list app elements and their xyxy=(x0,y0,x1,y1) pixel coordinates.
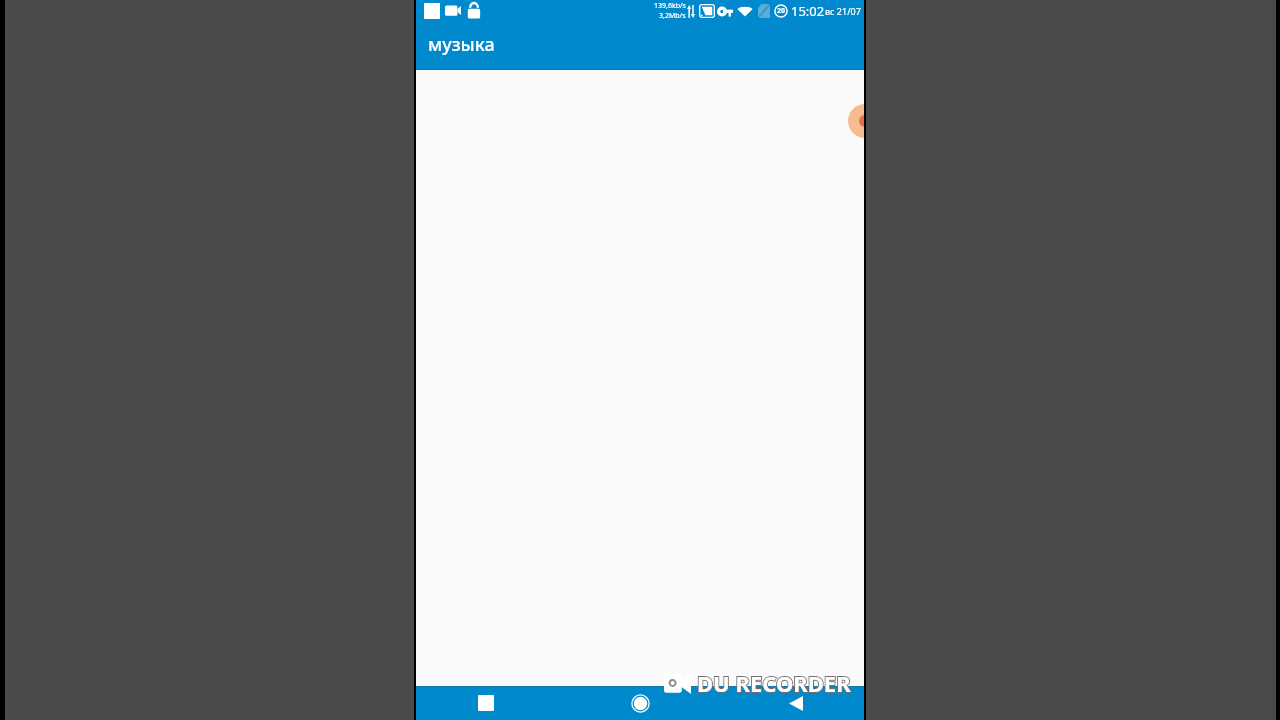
staticText: 139,6kb/s xyxy=(654,1,686,11)
staticText: вс 21/07 xyxy=(825,5,861,17)
staticText: 15:02 xyxy=(791,2,825,20)
button[interactable]: Back xyxy=(772,690,819,716)
staticText: 20 xyxy=(777,6,786,16)
button[interactable]: Home xyxy=(617,689,664,717)
staticText: DU RECORDER xyxy=(697,668,851,698)
staticText: DU RECORDER xyxy=(697,668,851,698)
staticText: музыка xyxy=(428,32,495,57)
button[interactable]: Screen recorder bubble xyxy=(848,104,864,138)
button[interactable]: Recent apps xyxy=(462,690,509,716)
staticText: 3,2Mb/s xyxy=(659,11,686,21)
